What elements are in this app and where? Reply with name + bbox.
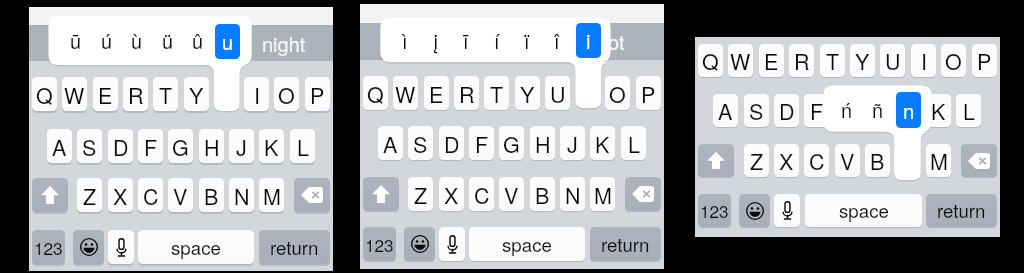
button[interactable]: S: [408, 126, 433, 160]
button[interactable]: N: [560, 177, 585, 211]
button[interactable]: P: [636, 76, 661, 110]
button[interactable]: L: [956, 94, 981, 127]
button[interactable]: M: [926, 144, 951, 177]
button[interactable]: ï: [512, 18, 542, 62]
button[interactable]: B: [530, 177, 555, 211]
button[interactable]: Shift: [363, 177, 399, 211]
button[interactable]: V: [168, 178, 193, 212]
button[interactable]: Z: [408, 177, 433, 211]
button[interactable]: T: [820, 44, 845, 77]
button[interactable]: Y: [515, 76, 540, 110]
button[interactable]: ū: [60, 16, 91, 65]
button[interactable]: Emoji: [404, 227, 435, 261]
button[interactable]: space: [469, 227, 585, 261]
button[interactable]: O: [605, 76, 630, 110]
button[interactable]: D: [439, 126, 464, 160]
button[interactable]: K: [926, 94, 951, 127]
button[interactable]: spot: [545, 23, 625, 60]
button[interactable]: return: [259, 230, 330, 264]
button[interactable]: I: [911, 44, 936, 77]
button[interactable]: J: [229, 129, 254, 163]
button[interactable]: F: [138, 129, 163, 163]
button[interactable]: X: [439, 177, 464, 211]
button[interactable]: Delete: [294, 178, 330, 212]
button[interactable]: M: [590, 177, 615, 211]
button[interactable]: O: [941, 44, 966, 77]
button[interactable]: į: [421, 18, 451, 62]
button[interactable]: ú: [91, 16, 122, 65]
button[interactable]: Z: [744, 144, 769, 177]
button[interactable]: A: [378, 126, 403, 160]
button[interactable]: T: [484, 76, 509, 110]
button[interactable]: R: [789, 44, 814, 77]
button[interactable]: V: [499, 177, 524, 211]
button[interactable]: C: [804, 144, 829, 177]
button[interactable]: return: [590, 227, 661, 261]
button[interactable]: Delete: [961, 144, 997, 177]
button[interactable]: ù: [121, 16, 152, 65]
button[interactable]: G: [499, 126, 524, 160]
button[interactable]: R: [123, 77, 148, 111]
button[interactable]: Z: [77, 178, 102, 212]
button[interactable]: T: [153, 77, 178, 111]
button[interactable]: S: [744, 94, 769, 127]
button[interactable]: Emoji: [73, 230, 104, 264]
button[interactable]: P: [972, 44, 997, 77]
button[interactable]: X: [774, 144, 799, 177]
button[interactable]: D: [108, 129, 133, 163]
button[interactable]: N: [229, 178, 254, 212]
button[interactable]: Dictation: [439, 227, 465, 261]
button[interactable]: Emoji: [739, 194, 770, 227]
button[interactable]: U: [880, 44, 905, 77]
button[interactable]: C: [138, 178, 163, 212]
button[interactable]: Y: [184, 77, 209, 111]
button[interactable]: u: [215, 24, 240, 59]
button[interactable]: û: [182, 16, 213, 65]
button[interactable]: space: [138, 230, 254, 264]
button[interactable]: X: [108, 178, 133, 212]
button[interactable]: K: [259, 129, 284, 163]
button[interactable]: í: [482, 18, 512, 62]
button[interactable]: L: [621, 126, 646, 160]
button[interactable]: Shift: [32, 178, 68, 212]
button[interactable]: C: [469, 177, 494, 211]
button[interactable]: H: [530, 126, 555, 160]
button[interactable]: ń: [832, 86, 862, 132]
button[interactable]: 123: [32, 230, 65, 264]
button[interactable]: Y: [850, 44, 875, 77]
button[interactable]: ü: [152, 16, 183, 65]
button[interactable]: R: [454, 76, 479, 110]
button[interactable]: W: [62, 77, 87, 111]
button[interactable]: Q: [363, 76, 388, 110]
button[interactable]: return: [926, 194, 997, 227]
button[interactable]: n: [896, 92, 921, 128]
button[interactable]: Dictation: [108, 230, 134, 264]
button[interactable]: night: [243, 25, 324, 61]
button[interactable]: G: [168, 129, 193, 163]
button[interactable]: Q: [698, 44, 723, 77]
button[interactable]: ì: [390, 18, 420, 62]
button[interactable]: 123: [698, 194, 731, 227]
button[interactable]: F: [469, 126, 494, 160]
button[interactable]: ñ: [863, 86, 893, 132]
button[interactable]: F: [804, 94, 829, 127]
button[interactable]: P: [305, 77, 330, 111]
button[interactable]: A: [47, 129, 72, 163]
button[interactable]: i: [576, 23, 601, 58]
button[interactable]: B: [199, 178, 224, 212]
button[interactable]: Delete: [625, 177, 661, 211]
button[interactable]: Shift: [698, 144, 734, 177]
button[interactable]: E: [424, 76, 449, 110]
button[interactable]: 123: [363, 227, 396, 261]
button[interactable]: W: [728, 44, 753, 77]
button[interactable]: K: [590, 126, 615, 160]
button[interactable]: U: [545, 76, 570, 110]
button[interactable]: A: [713, 94, 738, 127]
button[interactable]: î: [542, 18, 572, 62]
button[interactable]: E: [759, 44, 784, 77]
button[interactable]: J: [560, 126, 585, 160]
button[interactable]: ī: [451, 18, 481, 62]
button[interactable]: E: [93, 77, 118, 111]
button[interactable]: I: [244, 77, 269, 111]
button[interactable]: H: [199, 129, 224, 163]
